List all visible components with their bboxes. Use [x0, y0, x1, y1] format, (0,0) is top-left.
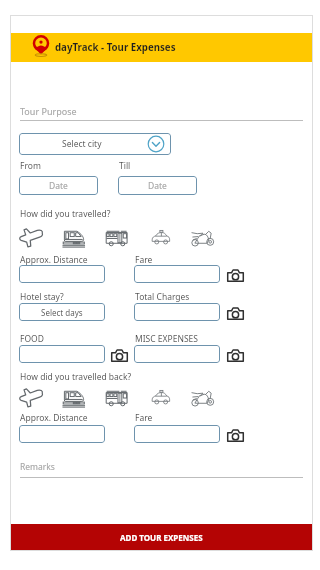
button[interactable]: Select days [19, 303, 105, 321]
button[interactable] [19, 345, 105, 363]
button[interactable]: Car return [148, 385, 174, 411]
staticText: How did you travelled back? [20, 371, 132, 383]
button[interactable] [134, 345, 220, 363]
staticText: Date [49, 180, 68, 192]
button[interactable]: Bus outbound [104, 225, 130, 251]
staticText: ADD TOUR EXPENSES [120, 532, 203, 543]
staticText: Remarks [20, 461, 55, 473]
button[interactable] [19, 265, 105, 283]
button[interactable] [134, 425, 220, 443]
staticText: How did you travelled? [20, 208, 111, 220]
staticText: Fare [135, 254, 153, 266]
button[interactable]: Expand city list [146, 134, 166, 154]
button[interactable]: Train return [61, 385, 87, 411]
staticText: dayTrack - Tour Expenses [55, 41, 176, 54]
button[interactable]: Date [19, 176, 98, 195]
staticText: FOOD [20, 333, 44, 345]
button[interactable]: Take photo [226, 426, 245, 445]
button[interactable]: dayTrack - Tour Expenses [11, 33, 312, 62]
button[interactable]: Take photo [226, 346, 245, 365]
staticText: Total Charges [135, 291, 190, 303]
button[interactable] [19, 425, 105, 443]
button[interactable] [134, 303, 220, 321]
button[interactable]: Train outbound [61, 225, 87, 251]
staticText: Select days [41, 307, 83, 318]
button[interactable]: Take photo [110, 346, 129, 365]
button[interactable]: Motorbike return [190, 385, 216, 411]
staticText: MISC EXPENSES [135, 333, 198, 345]
button[interactable]: Plane return [18, 385, 44, 411]
button[interactable]: Take photo [226, 304, 245, 323]
staticText: Approx. Distance [20, 254, 88, 266]
staticText: Select city [62, 138, 102, 150]
staticText: Till [119, 160, 131, 172]
staticText: Hotel stay? [20, 291, 64, 303]
staticText: Tour Purpose [20, 105, 77, 117]
button[interactable]: Car outbound [148, 225, 174, 251]
button[interactable]: Take photo [226, 266, 245, 285]
button[interactable]: ADD TOUR EXPENSES [11, 524, 312, 550]
staticText: Approx. Distance [20, 412, 88, 424]
staticText: Date [148, 180, 167, 192]
button[interactable]: Select city [19, 133, 171, 155]
staticText: From [20, 160, 41, 172]
button[interactable]: Date [118, 176, 197, 195]
staticText: Fare [135, 412, 153, 424]
button[interactable]: Plane outbound [18, 225, 44, 251]
button[interactable]: Motorbike outbound [190, 225, 216, 251]
button[interactable] [134, 265, 220, 283]
button[interactable]: Bus return [104, 385, 130, 411]
